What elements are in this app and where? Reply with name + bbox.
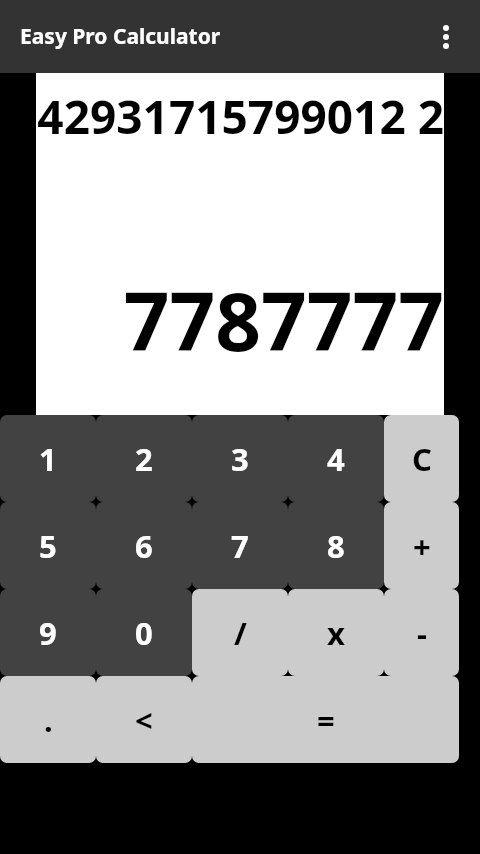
staticText: = (317, 699, 335, 741)
button[interactable]: . (0, 676, 96, 763)
button[interactable]: < (96, 676, 192, 763)
button[interactable]: 3 (192, 415, 288, 502)
staticText: Easy Pro Calculator (20, 22, 221, 51)
staticText: 3 (231, 438, 249, 480)
staticText: 0 (135, 612, 153, 654)
staticText: - (417, 612, 427, 654)
button[interactable]: 1 (0, 415, 96, 502)
staticText: / (234, 612, 247, 654)
button[interactable]: 7 (192, 502, 288, 589)
button[interactable]: = (192, 676, 459, 763)
staticText: 8 (327, 525, 345, 567)
staticText: 2 (135, 438, 153, 480)
staticText: 5 (39, 525, 57, 567)
button[interactable]: 8 (288, 502, 384, 589)
staticText: 1 (39, 438, 57, 480)
staticText: x (327, 612, 345, 654)
staticText: < (135, 699, 153, 741)
button[interactable]: 0 (96, 589, 192, 676)
button[interactable]: 4 (288, 415, 384, 502)
staticText: 42931715799012 2 (36, 85, 444, 148)
staticText: 7787777 (36, 265, 444, 374)
staticText: 7 (231, 525, 249, 567)
staticText: + (413, 525, 431, 567)
button[interactable]: x (288, 589, 384, 676)
button[interactable]: - (384, 589, 459, 676)
button[interactable]: / (192, 589, 288, 676)
button[interactable]: 6 (96, 502, 192, 589)
staticText: 4 (327, 438, 345, 480)
button[interactable]: C (384, 415, 459, 502)
staticText: . (44, 699, 53, 741)
button[interactable]: + (384, 502, 459, 589)
staticText: 6 (135, 525, 153, 567)
staticText: C (412, 438, 432, 480)
button[interactable]: 2 (96, 415, 192, 502)
button[interactable]: 9 (0, 589, 96, 676)
staticText: 9 (39, 612, 57, 654)
button[interactable]: 5 (0, 502, 96, 589)
button[interactable]: More options (428, 19, 464, 55)
